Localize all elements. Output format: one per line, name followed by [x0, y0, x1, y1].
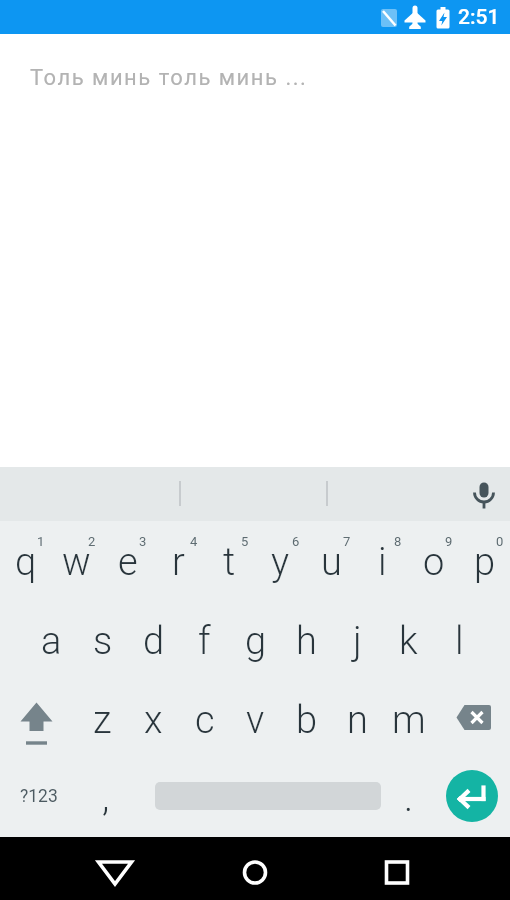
button[interactable]: j [332, 600, 383, 679]
button[interactable]: y [255, 521, 306, 600]
staticText: l [455, 619, 464, 664]
staticText: 2 [88, 534, 96, 549]
button[interactable]: q [0, 521, 51, 600]
staticText: j [353, 619, 362, 664]
staticText: 6 [292, 534, 300, 549]
button[interactable]: i [357, 521, 408, 600]
staticText: p [474, 540, 496, 585]
button[interactable]: ?123 [0, 757, 77, 836]
staticText: o [423, 540, 445, 585]
button[interactable]: h [281, 600, 332, 679]
staticText: . [404, 776, 414, 821]
staticText: f [198, 619, 211, 664]
button[interactable]: Толь минь толь минь ... [0, 34, 510, 467]
button[interactable]: p [459, 521, 510, 600]
button[interactable]: m [383, 679, 434, 757]
staticText: g [245, 619, 267, 664]
staticText: 8 [394, 534, 402, 549]
staticText: w [62, 540, 91, 585]
staticText: d [143, 619, 165, 664]
button[interactable] [446, 770, 498, 822]
staticText: 1 [37, 534, 45, 549]
staticText: Толь минь толь минь ... [30, 65, 308, 91]
staticText: 0 [496, 534, 504, 549]
staticText: h [296, 619, 317, 664]
button[interactable]: l [434, 600, 485, 679]
staticText: s [93, 619, 113, 664]
button[interactable]: a [26, 600, 77, 679]
staticText: 5 [241, 534, 249, 549]
button[interactable]: d [128, 600, 179, 679]
button[interactable] [221, 838, 289, 898]
staticText: , [102, 776, 110, 821]
staticText: n [347, 698, 368, 743]
button[interactable]: k [383, 600, 434, 679]
button[interactable] [0, 679, 77, 757]
staticText: i [378, 540, 387, 585]
button[interactable]: r [153, 521, 204, 600]
button[interactable] [459, 467, 510, 521]
button[interactable] [363, 838, 431, 898]
staticText: k [399, 619, 418, 664]
button[interactable]: u [306, 521, 357, 600]
staticText: ?123 [20, 786, 58, 807]
staticText: 4 [190, 534, 198, 549]
button[interactable]: v [230, 679, 281, 757]
staticText: y [271, 540, 290, 585]
button[interactable]: o [408, 521, 459, 600]
button[interactable] [434, 679, 510, 757]
button[interactable]: . [383, 757, 434, 836]
staticText: a [41, 619, 62, 664]
button[interactable]: t [204, 521, 255, 600]
staticText: t [223, 540, 236, 585]
button[interactable]: n [332, 679, 383, 757]
staticText: 9 [445, 534, 453, 549]
staticText: q [15, 540, 37, 585]
staticText: 3 [139, 534, 147, 549]
staticText: u [321, 540, 342, 585]
button[interactable]: x [128, 679, 179, 757]
staticText: v [246, 698, 265, 743]
staticText: z [93, 698, 112, 743]
button[interactable]: c [179, 679, 230, 757]
staticText: b [296, 698, 318, 743]
staticText: e [118, 540, 138, 585]
button[interactable]: f [179, 600, 230, 679]
button[interactable]: w [51, 521, 102, 600]
button[interactable]: , [80, 757, 131, 836]
staticText: c [195, 698, 215, 743]
staticText: 2:51 [458, 5, 500, 30]
button[interactable]: z [77, 679, 128, 757]
button[interactable]: s [77, 600, 128, 679]
staticText: x [144, 698, 163, 743]
staticText: 7 [343, 534, 351, 549]
staticText: r [172, 540, 185, 585]
button[interactable]: g [230, 600, 281, 679]
staticText: m [392, 698, 426, 743]
button[interactable] [81, 838, 149, 898]
button[interactable]: b [281, 679, 332, 757]
button[interactable]: e [102, 521, 153, 600]
